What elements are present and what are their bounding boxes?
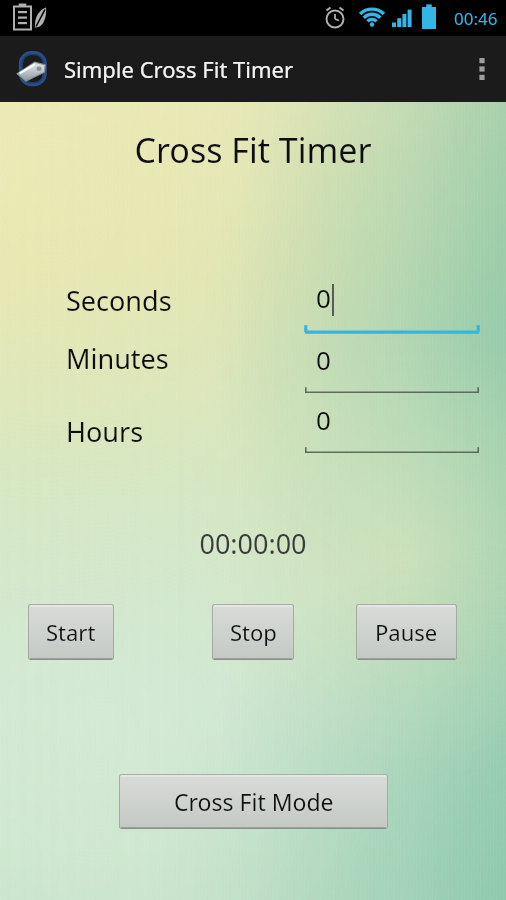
- staticText: Hours: [66, 413, 144, 450]
- staticText: 0: [316, 342, 331, 377]
- staticText: Simple Cross Fit Timer: [64, 54, 294, 84]
- staticText: 0: [316, 402, 331, 437]
- staticText: Seconds: [66, 282, 172, 319]
- staticText: 00:00:00: [0, 525, 506, 562]
- staticText: Cross Fit Timer: [0, 127, 506, 173]
- button[interactable]: 0: [305, 402, 479, 450]
- button[interactable]: More options: [458, 36, 506, 102]
- staticText: Start: [46, 617, 96, 647]
- button[interactable]: 0: [305, 342, 479, 390]
- staticText: Cross Fit Mode: [174, 786, 334, 817]
- button[interactable]: Start: [28, 604, 114, 660]
- staticText: 0: [316, 280, 331, 315]
- staticText: Stop: [230, 617, 277, 647]
- staticText: Minutes: [66, 340, 169, 377]
- button[interactable]: 0: [305, 280, 479, 328]
- button[interactable]: Cross Fit Mode: [119, 774, 388, 829]
- button[interactable]: Pause: [356, 604, 457, 660]
- staticText: Pause: [375, 617, 438, 647]
- button[interactable]: Stop: [212, 604, 294, 660]
- staticText: 00:46: [454, 7, 498, 30]
